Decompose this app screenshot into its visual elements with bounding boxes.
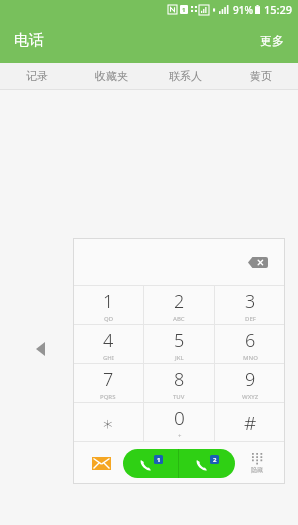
button[interactable]: Hide keypad	[235, 442, 279, 484]
staticText: 1	[157, 456, 161, 464]
staticText: 记录	[26, 69, 48, 83]
button[interactable]: 联系人	[148, 63, 223, 89]
button[interactable]: 2	[144, 286, 214, 325]
staticText: TUV	[173, 393, 185, 401]
staticText: 0	[174, 405, 185, 431]
button[interactable]: 记录	[0, 63, 74, 89]
staticText: 更多	[260, 33, 284, 48]
button[interactable]: 黄页	[223, 63, 298, 89]
staticText: WXYZ	[242, 393, 259, 401]
staticText: ∗	[102, 412, 114, 434]
staticText: 电话	[14, 31, 44, 50]
staticText: 4	[103, 328, 114, 353]
button[interactable]: 电话	[8, 27, 50, 54]
button[interactable]: 3	[215, 286, 285, 325]
staticText: 3	[245, 289, 256, 314]
staticText: DEF	[245, 315, 256, 323]
staticText: 联系人	[169, 69, 202, 83]
staticText: 6	[245, 328, 256, 353]
staticText: ABC	[173, 315, 185, 323]
staticText: MNO	[243, 354, 258, 362]
staticText: QD	[104, 315, 114, 323]
staticText: JKL	[175, 354, 184, 362]
button[interactable]: 8	[144, 364, 214, 403]
staticText: PQRS	[100, 393, 116, 401]
button[interactable]: Call with SIM 1	[123, 449, 178, 478]
staticText: 黄页	[250, 69, 272, 83]
button[interactable]: #	[215, 403, 285, 442]
staticText: +	[178, 432, 182, 440]
staticText: 2	[213, 456, 217, 464]
button[interactable]: Call with SIM 2	[179, 449, 235, 478]
button[interactable]: 更多	[254, 29, 290, 52]
staticText: #	[244, 410, 257, 436]
staticText: 收藏夹	[95, 69, 128, 83]
button[interactable]: Message	[79, 442, 123, 484]
button[interactable]: 9	[215, 364, 285, 403]
staticText: 91%	[233, 3, 253, 17]
staticText: 15:29	[264, 2, 293, 17]
button[interactable]: 5	[144, 325, 214, 364]
button[interactable]: 1	[73, 286, 143, 325]
button[interactable]: 4	[73, 325, 143, 364]
staticText: 9	[245, 367, 256, 392]
staticText: 2	[174, 289, 185, 314]
button[interactable]: Expand panel	[28, 337, 52, 361]
button[interactable]: 6	[215, 325, 285, 364]
staticText: 1	[182, 6, 186, 14]
button[interactable]: 0	[144, 403, 214, 442]
button[interactable]: Backspace	[245, 252, 271, 272]
staticText: 1	[103, 289, 114, 314]
button[interactable]: ∗	[73, 403, 143, 442]
staticText: 8	[174, 367, 185, 392]
staticText: GHI	[103, 354, 114, 362]
staticText: 7	[103, 367, 114, 392]
button[interactable]: 收藏夹	[74, 63, 148, 89]
staticText: 5	[174, 328, 185, 353]
staticText: 隐藏	[251, 466, 263, 474]
button[interactable]: 7	[73, 364, 143, 403]
